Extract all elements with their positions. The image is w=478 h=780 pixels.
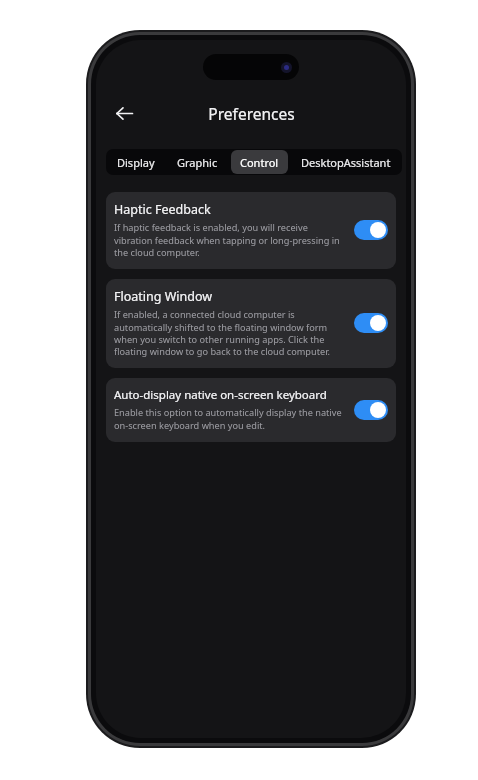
staticText: Display (117, 155, 155, 170)
button[interactable]: DesktopAssistant (292, 150, 400, 174)
button[interactable]: Toggle (354, 220, 388, 240)
staticText: Graphic (177, 155, 218, 170)
button[interactable]: Floating Window (106, 279, 396, 368)
staticText: Auto-display native on-screen keyboard (114, 387, 327, 403)
staticText: Floating Window (114, 288, 213, 305)
staticText: Control (240, 155, 279, 170)
button[interactable]: Toggle (354, 400, 388, 420)
button[interactable]: Display (108, 150, 164, 174)
button[interactable]: Graphic (168, 150, 227, 174)
button[interactable]: Control (231, 150, 288, 174)
button[interactable]: Haptic Feedback (106, 192, 396, 269)
button[interactable]: Auto-display native on-screen keyboard (106, 378, 396, 442)
staticText: Enable this option to automatically disp… (114, 406, 346, 432)
staticText: Haptic Feedback (114, 201, 211, 218)
staticText: If haptic feedback is enabled, you will … (114, 221, 346, 259)
staticText: DesktopAssistant (301, 155, 391, 170)
button[interactable]: Toggle (354, 313, 388, 333)
staticText: If enabled, a connected cloud computer i… (114, 308, 346, 358)
staticText: Preferences (208, 103, 295, 124)
button[interactable]: Back (106, 95, 142, 131)
